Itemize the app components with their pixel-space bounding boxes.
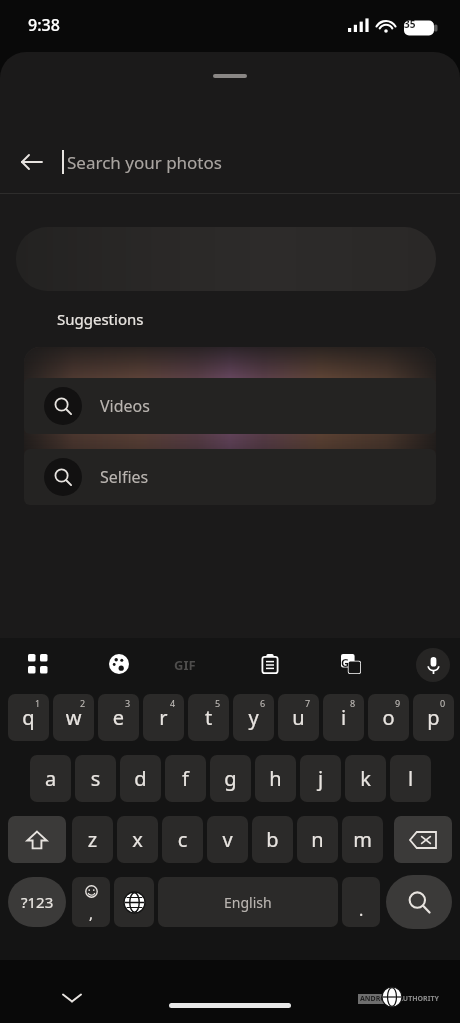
staticText: c <box>162 826 203 853</box>
staticText: 0 <box>440 697 446 709</box>
staticText: t <box>188 704 229 731</box>
staticText: English <box>224 893 272 912</box>
staticText: Selfies <box>100 466 149 488</box>
staticText: 9 <box>395 697 401 709</box>
staticText: 4 <box>170 697 176 709</box>
button[interactable]: Switch keyboard <box>16 642 60 686</box>
staticText: ?123 <box>21 892 54 912</box>
staticText: G <box>341 655 349 670</box>
staticText: x <box>117 826 158 853</box>
staticText: p <box>413 704 454 731</box>
staticText: f <box>165 765 206 792</box>
staticText: j <box>300 765 341 792</box>
button[interactable]: c <box>162 816 203 863</box>
staticText: u <box>278 704 319 731</box>
staticText: h <box>255 765 296 792</box>
staticText: k <box>345 765 386 792</box>
button[interactable]: Selfies <box>24 449 436 505</box>
button[interactable]: Shift <box>8 816 66 863</box>
button[interactable]: Back <box>0 134 62 190</box>
staticText: v <box>207 826 248 853</box>
staticText: d <box>120 765 161 792</box>
staticText: 35 <box>404 17 416 31</box>
staticText: w <box>53 704 94 731</box>
button[interactable]: m <box>342 816 383 863</box>
button[interactable]: Backspace <box>394 816 452 863</box>
button[interactable]: Voice input <box>416 648 450 682</box>
staticText: 9:38 <box>28 14 60 36</box>
staticText: o <box>368 704 409 731</box>
button[interactable]: s <box>75 755 116 802</box>
button[interactable]: Change language <box>114 877 154 927</box>
button[interactable]: Stickers <box>97 642 141 686</box>
button[interactable]: n <box>297 816 338 863</box>
staticText: Suggestions <box>57 309 144 329</box>
button[interactable]: Emoji <box>72 877 110 927</box>
staticText: i <box>323 704 364 731</box>
button[interactable]: p <box>413 694 454 741</box>
staticText: ANDROID <box>360 994 394 1004</box>
staticText: r <box>143 704 184 731</box>
staticText: Search your photos <box>67 151 222 174</box>
button[interactable]: d <box>120 755 161 802</box>
button[interactable]: Videos <box>24 378 436 434</box>
button[interactable]: w <box>53 694 94 741</box>
button[interactable]: g <box>210 755 251 802</box>
staticText: y <box>233 704 274 731</box>
button[interactable]: t <box>188 694 229 741</box>
button[interactable]: y <box>233 694 274 741</box>
staticText: e <box>98 704 139 731</box>
button[interactable]: q <box>8 694 49 741</box>
button[interactable]: e <box>98 694 139 741</box>
button[interactable]: English <box>158 877 338 927</box>
button[interactable]: v <box>207 816 248 863</box>
button[interactable]: a <box>30 755 71 802</box>
staticText: 3 <box>125 697 131 709</box>
staticText: a <box>30 765 71 792</box>
button[interactable]: j <box>300 755 341 802</box>
staticText: n <box>297 826 338 853</box>
staticText: AUTHORITY <box>398 994 439 1004</box>
button[interactable]: x <box>117 816 158 863</box>
button[interactable]: Search <box>386 875 452 929</box>
button[interactable]: o <box>368 694 409 741</box>
button[interactable]: r <box>143 694 184 741</box>
staticText: , <box>89 903 94 923</box>
staticText: l <box>390 765 431 792</box>
button[interactable]: z <box>72 816 113 863</box>
button[interactable]: h <box>255 755 296 802</box>
button[interactable]: i <box>323 694 364 741</box>
button[interactable]: Translate <box>329 642 373 686</box>
button[interactable]: k <box>345 755 386 802</box>
button[interactable]: b <box>252 816 293 863</box>
staticText: Videos <box>100 395 150 417</box>
button[interactable]: f <box>165 755 206 802</box>
staticText: 2 <box>80 697 86 709</box>
staticText: q <box>8 704 49 731</box>
staticText: 8 <box>350 697 356 709</box>
staticText: 7 <box>305 697 311 709</box>
staticText: b <box>252 826 293 853</box>
button[interactable]: u <box>278 694 319 741</box>
staticText: 6 <box>260 697 266 709</box>
button[interactable]: . <box>342 877 380 927</box>
staticText: z <box>72 826 113 853</box>
staticText: 1 <box>35 697 41 709</box>
staticText: . <box>359 899 364 921</box>
button[interactable]: Clipboard <box>248 642 292 686</box>
staticText: g <box>210 765 251 792</box>
staticText: 5 <box>215 697 221 709</box>
staticText: m <box>342 826 383 853</box>
staticText: s <box>75 765 116 792</box>
button[interactable]: Hide keyboard <box>52 978 92 1018</box>
button[interactable]: l <box>390 755 431 802</box>
button[interactable]: GIF <box>174 656 196 674</box>
button[interactable]: ?123 <box>8 877 66 927</box>
